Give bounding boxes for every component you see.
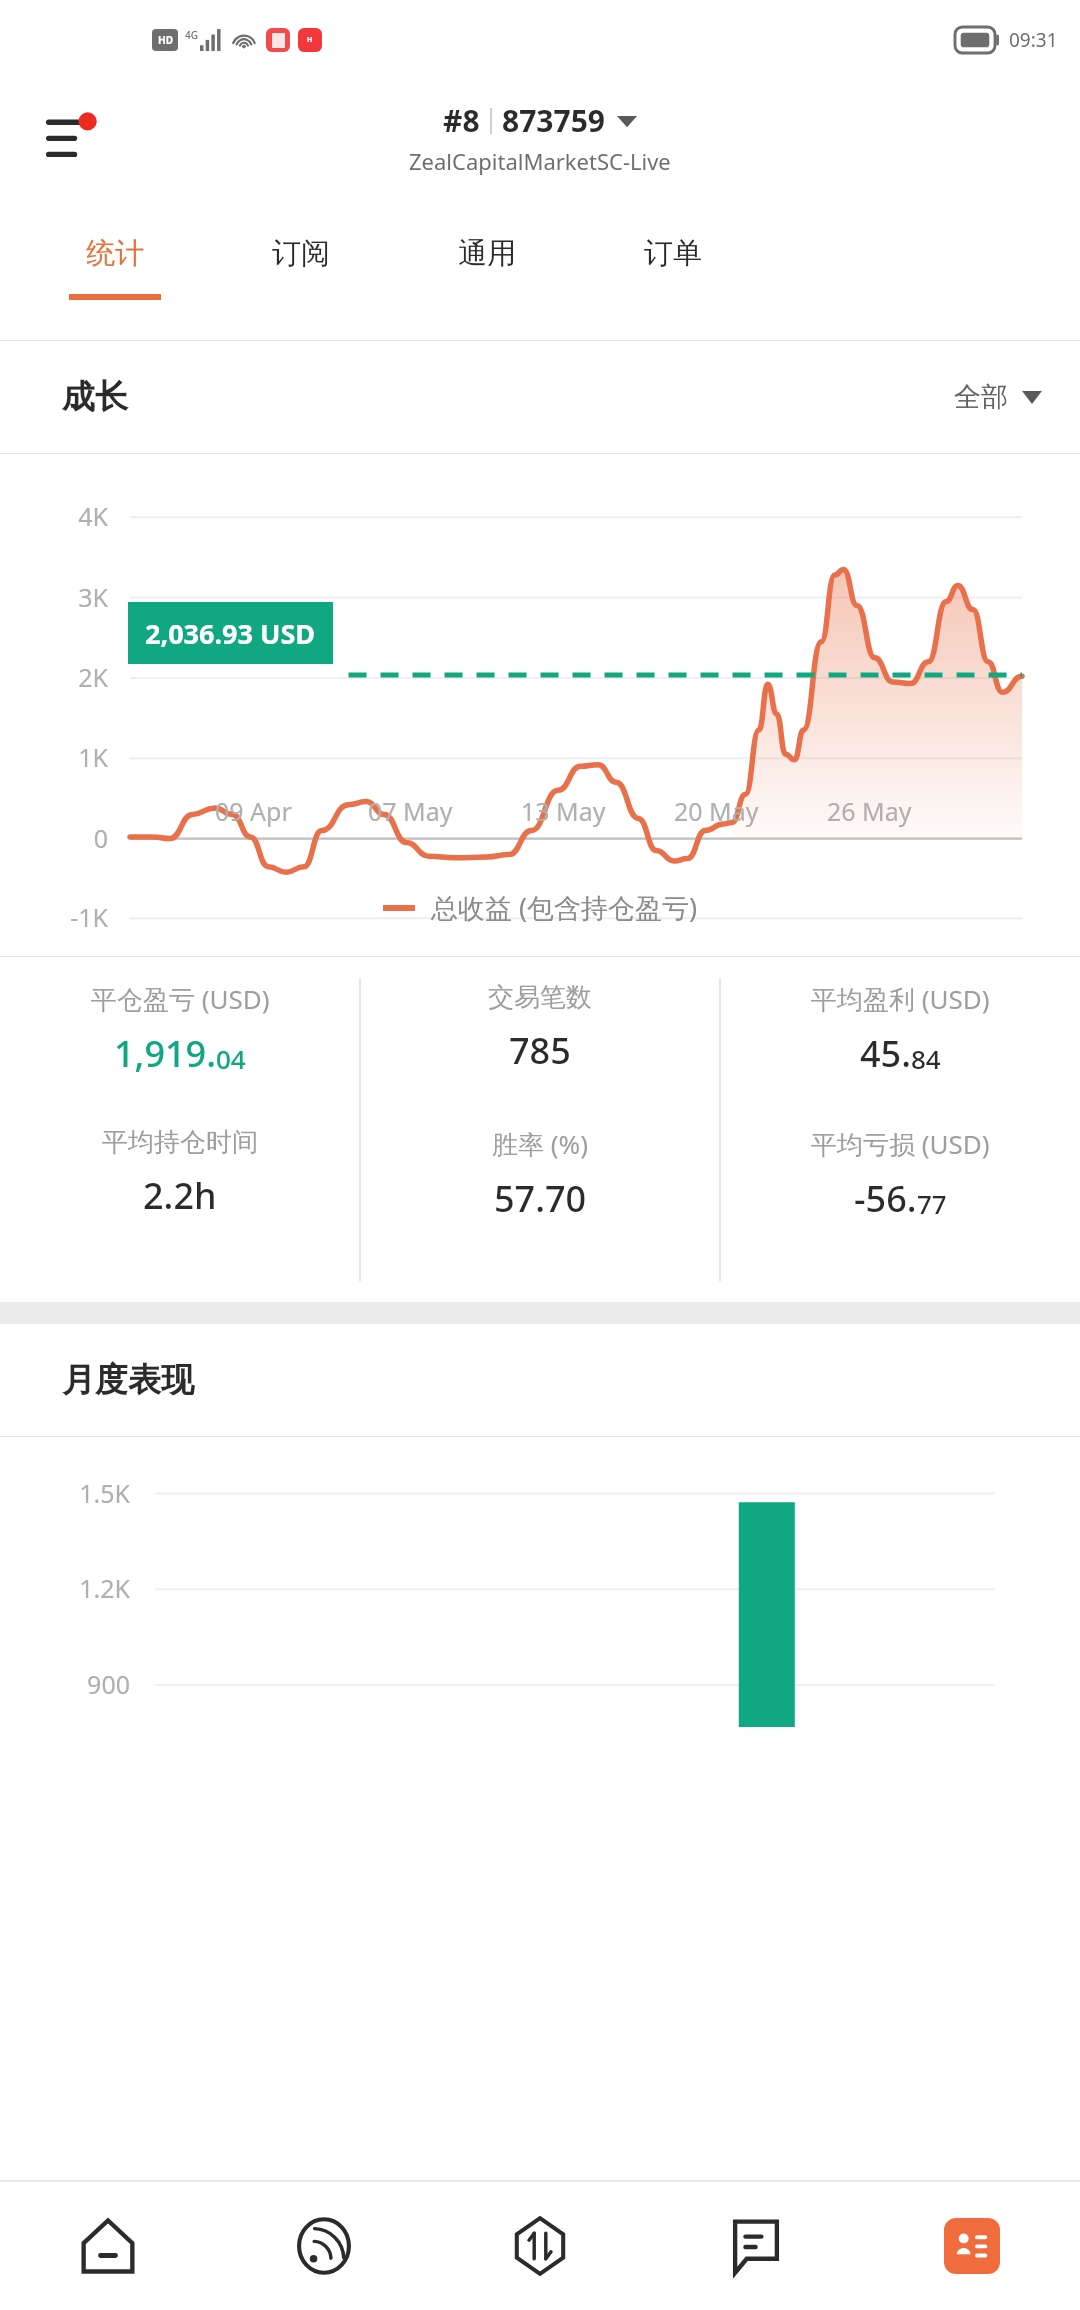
staticText: H	[307, 35, 313, 45]
staticText: 订阅	[272, 235, 330, 272]
staticText: 873759	[502, 100, 605, 141]
staticText: 77	[917, 1186, 947, 1221]
staticText: 总收益 (包含持仓盈亏)	[431, 889, 698, 926]
staticText: 09 Apr	[215, 794, 368, 828]
button[interactable]: 全部	[954, 380, 1042, 414]
button[interactable]: 统计	[22, 195, 208, 340]
staticText: 0	[28, 821, 108, 855]
staticText: 全部	[954, 380, 1008, 414]
staticText: 2K	[28, 660, 108, 694]
staticText: -1K	[28, 900, 108, 934]
staticText: 07 May	[368, 794, 521, 828]
staticText: -56.	[854, 1174, 917, 1223]
staticText: 统计	[86, 235, 144, 272]
staticText: ZealCapitalMarketSC-Live	[409, 146, 671, 176]
button[interactable]: 订单	[580, 195, 766, 340]
staticText: 900	[28, 1667, 130, 1701]
staticText: 4K	[28, 499, 108, 533]
button[interactable]: Trade	[432, 2182, 648, 2310]
staticText: 订单	[644, 235, 702, 272]
staticText: 785	[509, 1026, 571, 1075]
staticText: 09:31	[1009, 27, 1058, 53]
staticText: 成长	[62, 376, 128, 418]
staticText: 13 May	[521, 794, 674, 828]
button[interactable]: Signals	[216, 2182, 432, 2310]
staticText: 平均盈利 (USD)	[811, 981, 990, 1017]
staticText: 3K	[28, 580, 108, 614]
staticText: 平仓盈亏 (USD)	[91, 981, 270, 1017]
staticText: 通用	[458, 235, 516, 272]
staticText: 04	[216, 1041, 246, 1076]
button[interactable]: Menu	[36, 102, 108, 174]
staticText: 26 May	[827, 794, 980, 828]
staticText: 1.5K	[28, 1476, 130, 1510]
staticText: 20 May	[674, 794, 827, 828]
staticText: #8	[443, 100, 480, 141]
staticText: 45.	[860, 1029, 911, 1078]
button[interactable]: 通用	[394, 195, 580, 340]
staticText: 1K	[28, 740, 108, 774]
button[interactable]: Messages	[648, 2182, 864, 2310]
staticText: 1.2K	[28, 1571, 130, 1605]
staticText: 84	[911, 1041, 941, 1076]
staticText: 1,919.	[114, 1029, 216, 1078]
staticText: 2,036.93 USD	[145, 615, 316, 652]
staticText: HD	[158, 33, 173, 47]
button[interactable]: Home	[0, 2182, 216, 2310]
staticText: 胜率 (%)	[492, 1126, 588, 1162]
staticText: 2.2h	[143, 1171, 217, 1220]
staticText: 平均持仓时间	[102, 1126, 258, 1159]
staticText: 月度表现	[62, 1359, 194, 1401]
button[interactable]: 订阅	[208, 195, 394, 340]
staticText: 平均亏损 (USD)	[811, 1126, 990, 1162]
staticText: 交易笔数	[488, 981, 592, 1014]
button[interactable]: Profile	[864, 2182, 1080, 2310]
staticText: 57.70	[494, 1174, 587, 1223]
staticText: 4G	[185, 28, 198, 42]
